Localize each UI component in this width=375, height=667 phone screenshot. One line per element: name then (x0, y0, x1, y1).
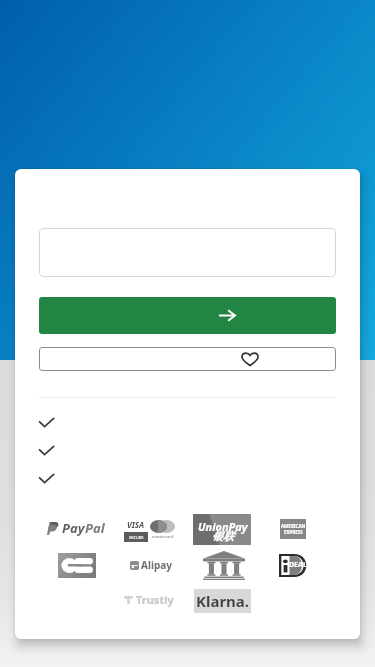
button[interactable]: Option (39, 471, 336, 499)
button[interactable]: Option (39, 443, 336, 471)
staticText: Pay (62, 519, 85, 537)
staticText: mastercard (152, 534, 174, 539)
staticText: VISA (127, 519, 145, 530)
staticText: EXPRESS (284, 529, 303, 535)
staticText: UnionPay (198, 519, 248, 534)
staticText: Pal (85, 519, 105, 537)
staticText: Trustly (136, 592, 174, 607)
staticText: DEAL (289, 560, 307, 570)
button[interactable]: Continue (39, 297, 336, 334)
staticText: Klarna. (196, 591, 250, 611)
button[interactable]: Option (39, 415, 336, 443)
staticText: Alipay (141, 558, 172, 572)
staticText: 银联 (212, 529, 234, 543)
staticText: AMERICAN (281, 523, 306, 529)
button[interactable]: Add to favorites (39, 347, 336, 371)
button[interactable]: Card number (39, 228, 336, 277)
staticText: SECURE (129, 535, 144, 540)
